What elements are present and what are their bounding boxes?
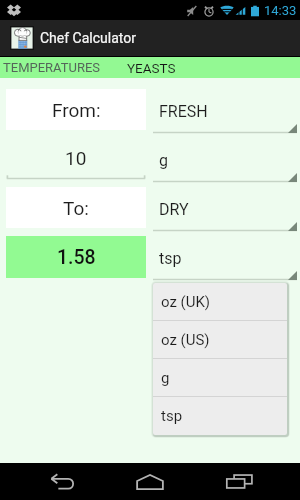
button[interactable]: DRY [153,187,297,231]
button[interactable]: TEMPERATURES [0,57,103,78]
staticText: 14:33 [264,3,297,18]
staticText: g [161,369,170,387]
button[interactable]: YEASTS [103,57,199,78]
button[interactable]: g [153,138,297,182]
staticText: 1.58 [57,246,96,269]
button[interactable]: Back [37,463,87,500]
staticText: DRY [159,200,189,219]
staticText: oz (US) [161,331,210,349]
button[interactable]: FRESH [153,89,297,133]
staticText: 10 [65,147,87,169]
button[interactable]: To: [6,187,146,228]
staticText: Chef Calculator [40,30,136,46]
staticText: tsp [161,407,183,425]
button[interactable]: Home [125,463,175,500]
button[interactable]: oz (UK) [153,283,287,321]
staticText: tsp [159,249,182,268]
button[interactable]: 1.58 [6,236,146,278]
staticText: oz (UK) [161,293,211,311]
button[interactable]: tsp [153,397,287,435]
staticText: g [159,151,168,170]
staticText: FRESH [159,102,208,121]
button[interactable]: Recent apps [214,463,264,500]
staticText: YEASTS [127,60,176,76]
staticText: TEMPERATURES [3,60,101,75]
button[interactable]: g [153,359,287,397]
button[interactable]: 10 [6,138,146,179]
staticText: From: [52,99,101,121]
staticText: To: [63,197,89,219]
button[interactable]: From: [6,89,146,130]
button[interactable]: oz (US) [153,321,287,359]
button[interactable]: tsp [153,236,297,280]
